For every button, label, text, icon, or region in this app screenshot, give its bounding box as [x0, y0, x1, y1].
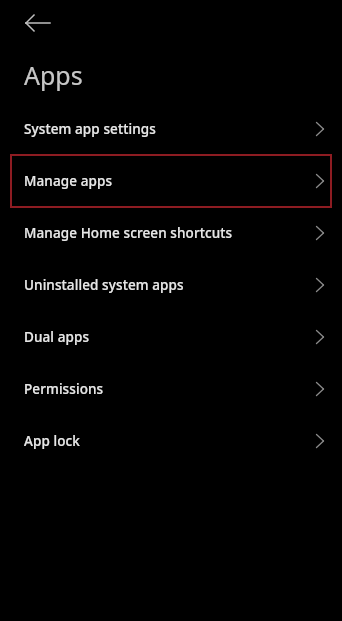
staticText: Uninstalled system apps — [24, 276, 184, 294]
staticText: App lock — [24, 432, 80, 450]
staticText: Manage Home screen shortcuts — [24, 224, 233, 242]
staticText: System app settings — [24, 120, 156, 138]
button[interactable]: Uninstalled system apps — [0, 259, 342, 311]
button[interactable]: Dual apps — [0, 311, 342, 363]
button[interactable]: System app settings — [0, 103, 342, 155]
button[interactable]: Permissions — [0, 363, 342, 415]
button[interactable]: App lock — [0, 415, 342, 467]
button[interactable]: Manage apps — [0, 155, 342, 207]
staticText: Apps — [24, 58, 83, 92]
staticText: Dual apps — [24, 328, 90, 346]
button[interactable]: Back — [18, 3, 58, 43]
staticText: Permissions — [24, 380, 104, 398]
button[interactable]: Manage Home screen shortcuts — [0, 207, 342, 259]
staticText: Manage apps — [24, 172, 113, 190]
